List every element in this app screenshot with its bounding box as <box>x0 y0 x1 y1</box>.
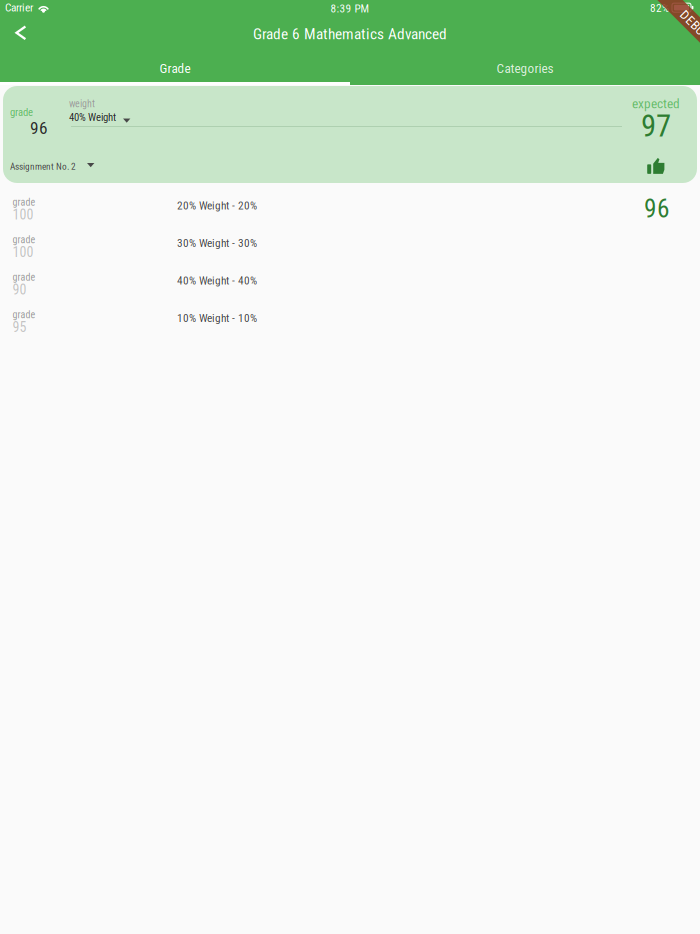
staticText: grade <box>10 106 33 118</box>
staticText: grade <box>12 196 35 208</box>
staticText: 8:39 PM <box>330 2 369 15</box>
button[interactable]: Grade <box>0 53 350 80</box>
button[interactable]: Categories <box>350 53 700 80</box>
button[interactable]: grade <box>0 185 700 222</box>
button[interactable]: Good grade <box>643 154 669 178</box>
staticText: Categories <box>496 61 553 76</box>
staticText: grade <box>12 271 35 283</box>
staticText: Assignment No. 2 <box>10 161 76 172</box>
button[interactable]: grade <box>0 222 700 260</box>
staticText: Carrier <box>5 1 33 14</box>
button[interactable]: grade <box>0 260 700 297</box>
staticText: 100 <box>12 206 33 223</box>
staticText: 96 <box>644 194 670 224</box>
staticText: 96 <box>30 118 48 138</box>
button[interactable]: Back <box>0 15 42 51</box>
staticText: 95 <box>12 319 26 335</box>
staticText: 97 <box>641 108 671 144</box>
staticText: 90 <box>12 281 26 298</box>
staticText: 20% Weight - 20% <box>177 199 257 212</box>
staticText: grade <box>12 234 35 246</box>
staticText: weight <box>69 98 95 110</box>
staticText: 10% Weight - 10% <box>177 311 257 325</box>
staticText: grade <box>12 309 35 321</box>
staticText: DEBUG <box>679 11 700 27</box>
staticText: 100 <box>12 244 33 260</box>
staticText: expected <box>632 96 680 112</box>
staticText: 40% Weight - 40% <box>177 274 257 287</box>
button[interactable]: grade <box>0 297 700 335</box>
staticText: 30% Weight - 30% <box>177 236 257 250</box>
button[interactable]: Assignment No. 2 <box>7 155 103 175</box>
staticText: 82% <box>650 1 669 15</box>
staticText: Grade <box>159 61 190 76</box>
staticText: 40% Weight <box>69 111 116 123</box>
staticText: Grade 6 Mathematics Advanced <box>253 25 447 43</box>
